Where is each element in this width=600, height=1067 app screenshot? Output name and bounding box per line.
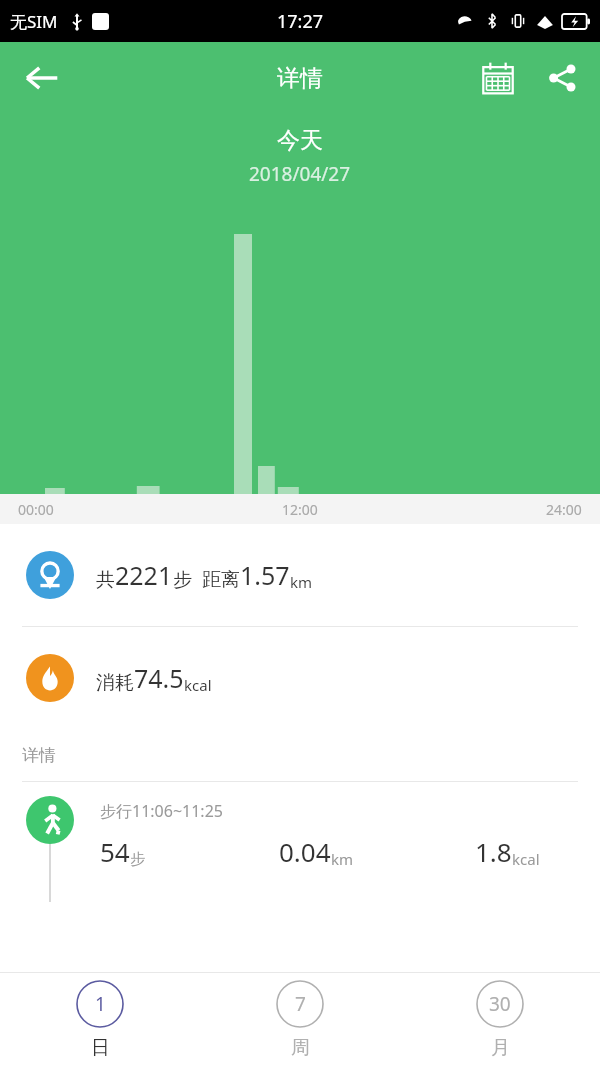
button[interactable]: 步行11:06~11:25 [0,782,600,972]
staticText: 1 [95,991,106,1017]
staticText: 月 [491,1036,510,1060]
button[interactable]: 1 [0,973,200,1067]
staticText: 周 [291,1036,310,1060]
button[interactable]: 消耗 [0,627,600,729]
staticText: 17:27 [277,9,324,34]
button[interactable]: Share [536,52,588,104]
staticText: 54 [100,834,130,869]
button[interactable]: 30 [400,973,600,1067]
staticText: 步 [130,850,145,869]
button[interactable]: Back [14,50,70,106]
staticText: 共 [96,568,115,592]
staticText: 7 [295,991,306,1017]
staticText: 消耗 [96,671,134,695]
staticText: 30 [489,991,511,1017]
staticText: 00:00 [18,500,54,519]
staticText: 步 [173,568,192,592]
staticText: 24:00 [546,500,582,519]
staticText: 距离 [202,568,240,592]
staticText: 1.57 [240,558,290,592]
staticText: 无SIM [10,10,58,33]
staticText: kcal [512,849,540,869]
button[interactable]: Calendar [472,52,524,104]
staticText: 2221 [115,558,173,592]
staticText: km [331,849,354,869]
staticText: 详情 [22,745,56,766]
staticText: 12:00 [282,500,318,519]
staticText: 步行11:06~11:25 [100,800,223,822]
staticText: kcal [184,675,212,695]
staticText: 2018/04/27 [249,161,351,187]
staticText: 0.04 [279,834,331,869]
staticText: 1.8 [475,834,512,869]
button[interactable]: 7 [200,973,400,1067]
staticText: 今天 [277,126,323,155]
staticText: 74.5 [134,661,184,695]
button[interactable]: 共 [0,524,600,626]
staticText: 日 [91,1036,110,1060]
staticText: 详情 [277,64,323,93]
staticText: km [290,572,313,592]
